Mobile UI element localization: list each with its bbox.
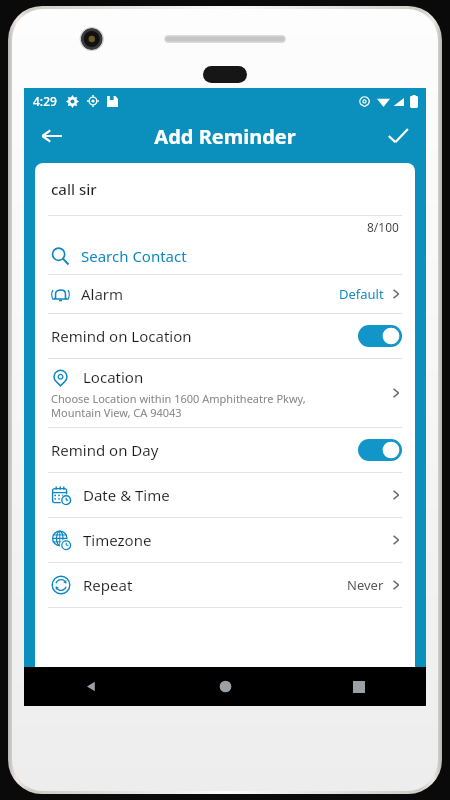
- staticText: 4:29: [33, 93, 57, 109]
- button[interactable]: Home: [158, 667, 292, 706]
- staticText: Never: [347, 576, 384, 594]
- button[interactable]: Back: [32, 116, 72, 156]
- button[interactable]: Location: [35, 359, 415, 427]
- staticText: 8/100: [367, 219, 399, 235]
- staticText: Location: [83, 367, 144, 387]
- button[interactable]: Remind on Location toggle: [358, 325, 402, 347]
- button[interactable]: Alarm: [35, 275, 415, 313]
- button[interactable]: Date & Time: [35, 473, 415, 517]
- button[interactable]: Save reminder: [378, 116, 418, 156]
- button[interactable]: Timezone: [35, 518, 415, 562]
- staticText: call sir: [51, 179, 97, 199]
- button[interactable]: Remind on Location: [35, 314, 415, 358]
- staticText: Repeat: [83, 575, 133, 595]
- staticText: Remind on Location: [51, 326, 192, 346]
- staticText: Add Reminder: [154, 123, 296, 150]
- staticText: Alarm: [81, 284, 124, 304]
- staticText: Date & Time: [83, 485, 170, 505]
- button[interactable]: call sir: [35, 163, 415, 215]
- staticText: Search Contact: [81, 246, 187, 266]
- button[interactable]: Remind on Day toggle: [358, 439, 402, 461]
- button[interactable]: Back: [24, 667, 158, 706]
- staticText: Remind on Day: [51, 440, 159, 460]
- staticText: Choose Location within 1600 Amphitheatre…: [51, 391, 306, 420]
- staticText: Default: [339, 285, 384, 303]
- button[interactable]: Remind on Day: [35, 428, 415, 472]
- button[interactable]: Repeat: [35, 563, 415, 607]
- button[interactable]: Recent apps: [292, 667, 426, 706]
- button[interactable]: Search Contact: [35, 238, 415, 274]
- staticText: Timezone: [83, 530, 152, 550]
